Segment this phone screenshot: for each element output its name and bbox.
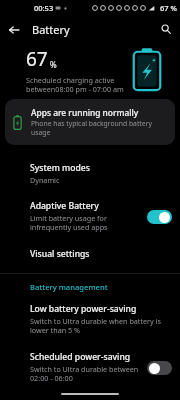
staticText: Apps are running normally xyxy=(31,107,139,118)
staticText: Limit battery usage for infrequently use… xyxy=(30,213,141,233)
staticText: Visual settings xyxy=(30,248,90,260)
staticText: Switch to Ultra durable when battery is … xyxy=(30,316,172,336)
staticText: System modes xyxy=(30,162,90,174)
staticText: Battery management xyxy=(30,282,108,292)
button[interactable]: Toggle on xyxy=(147,210,172,224)
staticText: Switch to Ultra durable between 02:00 - … xyxy=(30,364,141,384)
staticText: Phone has typical background battery usa… xyxy=(31,119,167,137)
button[interactable]: Battery care xyxy=(0,391,180,400)
staticText: 67 % xyxy=(160,3,177,13)
staticText: Battery xyxy=(32,22,70,37)
staticText: Dynamic xyxy=(30,175,60,185)
button[interactable]: Toggle off xyxy=(147,361,172,375)
staticText: 00:53 xyxy=(34,3,54,13)
button[interactable]: Back xyxy=(5,21,22,38)
button[interactable]: System modes xyxy=(0,154,180,192)
staticText: Adaptive Battery xyxy=(30,200,99,212)
button[interactable]: Apps are running normally xyxy=(5,99,175,145)
staticText: % xyxy=(50,59,57,70)
button[interactable]: Search xyxy=(157,20,175,38)
button[interactable]: Adaptive Battery xyxy=(0,192,180,240)
staticText: Scheduled charging active between08:00 p… xyxy=(26,75,124,95)
button[interactable]: Scheduled power-saving xyxy=(0,343,180,391)
staticText: Scheduled power-saving xyxy=(30,351,131,363)
button[interactable]: Visual settings xyxy=(0,240,180,267)
staticText: 67 xyxy=(26,46,48,72)
staticText: Low battery power-saving xyxy=(30,303,137,315)
button[interactable]: Low battery power-saving xyxy=(0,295,180,343)
